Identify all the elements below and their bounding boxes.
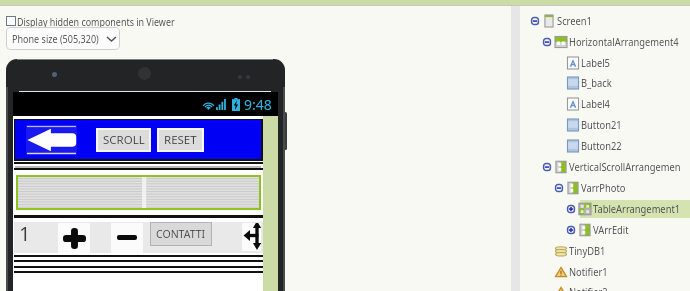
button[interactable]: Screen1 [531, 12, 600, 30]
staticText: VarrPhoto [581, 180, 626, 196]
staticText: TableArrangement1 [593, 201, 681, 217]
button[interactable]: VarrPhoto [555, 179, 636, 197]
button[interactable]: Remove contact [111, 223, 143, 253]
button[interactable]: VArrEdit [567, 221, 637, 239]
staticText: Label5 [581, 55, 610, 71]
staticText: 1 [19, 220, 31, 247]
staticText: SCROLL [103, 132, 145, 148]
button[interactable]: Button21 [555, 116, 631, 134]
staticText: Phone size (505,320) [12, 31, 99, 46]
button[interactable]: TableArrangement1 [567, 200, 690, 218]
button[interactable]: Phone size (505,320) [6, 27, 120, 50]
button[interactable]: Notifier1 [543, 263, 617, 281]
staticText: VArrEdit [593, 222, 629, 238]
button[interactable]: HorizontalArrangement4 [543, 33, 690, 51]
staticText: HorizontalArrangement4 [569, 34, 679, 50]
button[interactable]: Label4 [555, 95, 617, 113]
staticText: Button21 [581, 117, 622, 133]
staticText: Display hidden components in Viewer [17, 14, 175, 27]
staticText: B_back [581, 75, 612, 91]
button[interactable]: TinyDB1 [543, 242, 614, 260]
button[interactable]: Move [242, 223, 261, 251]
staticText: RESET [164, 132, 197, 148]
button[interactable]: Notifier2 [543, 283, 617, 291]
staticText: Screen1 [557, 13, 592, 29]
staticText: Notifier1 [569, 264, 608, 280]
button[interactable]: VerticalScrollArrangemen [543, 158, 690, 176]
button[interactable]: Label5 [555, 54, 617, 72]
button[interactable]: Button22 [555, 137, 631, 155]
staticText: TinyDB1 [569, 243, 606, 259]
staticText: 9:48 [244, 95, 272, 114]
staticText: CONTATTI [156, 227, 206, 241]
staticText: Label4 [581, 96, 610, 112]
button[interactable]: CONTATTI [150, 222, 212, 246]
button[interactable]: B_back [555, 74, 619, 92]
staticText: Button22 [581, 138, 622, 154]
button[interactable]: RESET [157, 128, 204, 152]
button[interactable]: Add contact [58, 223, 90, 253]
button[interactable]: Display hidden components in Viewer [6, 14, 217, 27]
button[interactable]: SCROLL [96, 128, 151, 152]
button[interactable]: Back [26, 125, 77, 155]
staticText: VerticalScrollArrangemen [569, 159, 680, 175]
staticText: Notifier2 [569, 284, 608, 291]
